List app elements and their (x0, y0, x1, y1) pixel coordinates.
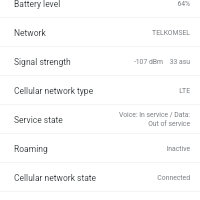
staticText: Battery level (14, 0, 177, 9)
button[interactable]: Roaming: Inactive (0, 134, 200, 163)
button[interactable]: Network: TELKOMSEL (0, 18, 200, 47)
button[interactable]: Cellular network state: Connected (0, 163, 200, 192)
staticText: Cellular network state (14, 173, 157, 183)
button[interactable]: Service state: Voice: In service / Data:… (0, 105, 200, 134)
staticText: Voice: In service / Data: Out of service (116, 111, 190, 128)
staticText: Signal strength (14, 57, 133, 67)
button[interactable]: Battery level: 64% (0, 0, 200, 18)
staticText: Connected (157, 174, 190, 182)
staticText: LTE (179, 87, 190, 95)
staticText: Network (14, 28, 152, 38)
staticText: TELKOMSEL (152, 29, 190, 37)
staticText: 64% (177, 0, 190, 8)
staticText: -107 dBm 33 asu (133, 58, 190, 66)
staticText: Cellular network type (14, 86, 179, 96)
button[interactable]: Signal strength: -107 dBm 33 asu (0, 47, 200, 76)
staticText: Roaming (14, 144, 166, 154)
button[interactable]: Cellular network type: LTE (0, 76, 200, 105)
staticText: Inactive (166, 145, 190, 153)
staticText: Service state (14, 115, 116, 125)
